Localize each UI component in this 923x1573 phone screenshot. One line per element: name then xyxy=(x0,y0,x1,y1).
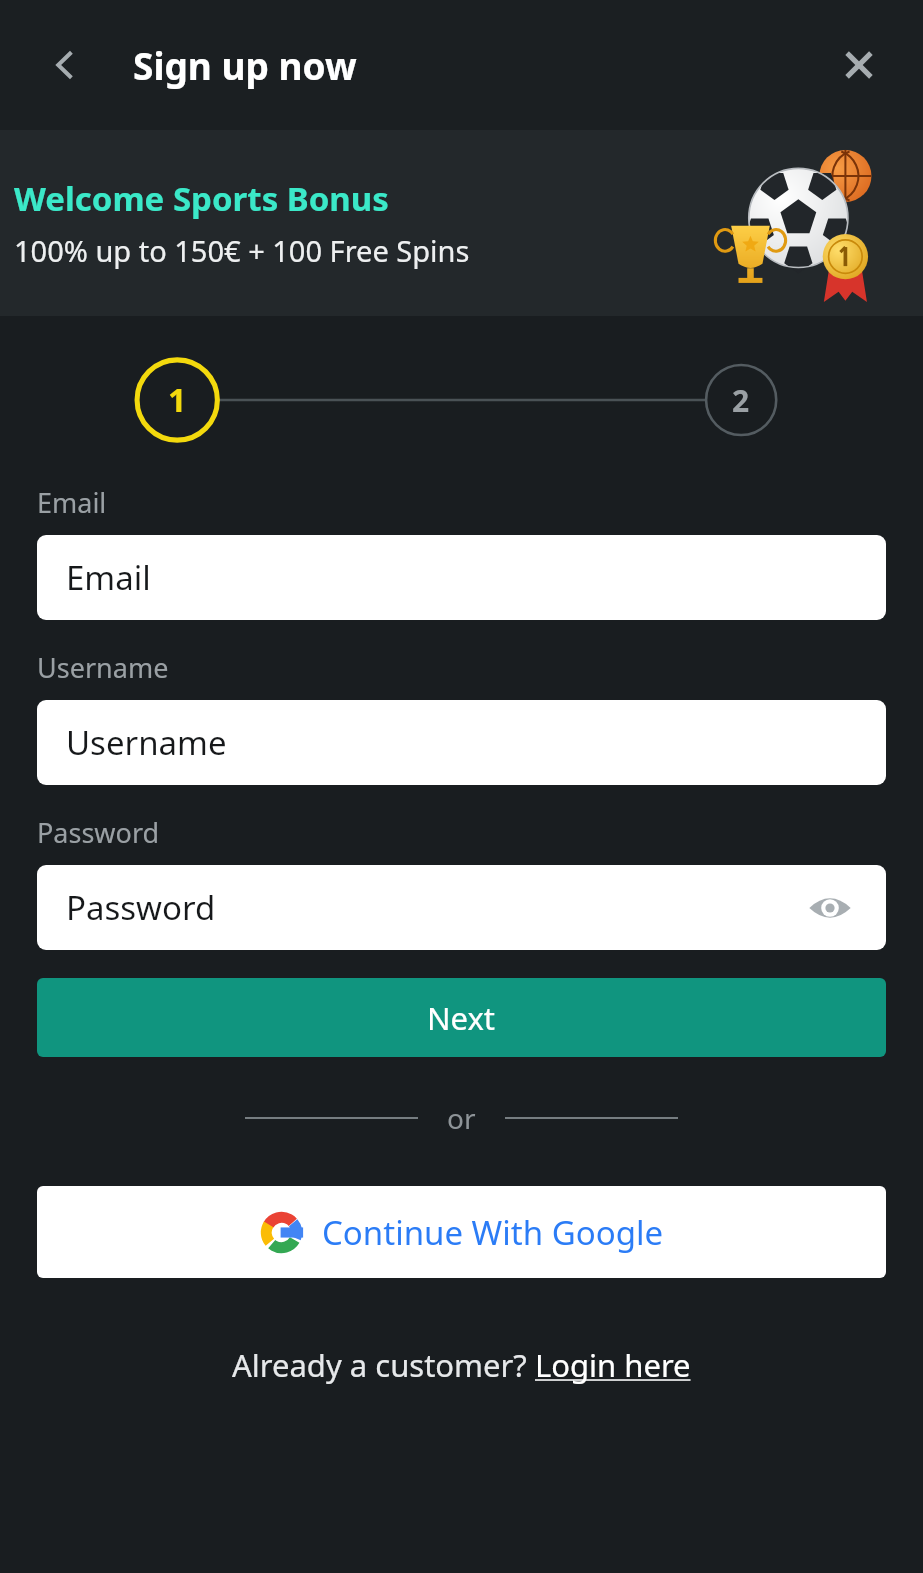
button[interactable]: Username xyxy=(37,700,886,785)
staticText: Already a customer? xyxy=(232,1344,535,1386)
button[interactable]: Continue With Google xyxy=(37,1186,886,1278)
button[interactable]: Next xyxy=(37,978,886,1057)
button[interactable]: Login here xyxy=(535,1344,691,1386)
staticText: 100% up to 150€ + 100 Free Spins xyxy=(14,231,470,270)
staticText: Email xyxy=(37,484,107,521)
button[interactable]: Step 2 xyxy=(706,365,776,435)
button[interactable]: Back xyxy=(34,34,96,96)
staticText: Username xyxy=(37,649,169,686)
staticText: Login here xyxy=(535,1344,691,1386)
staticText: Welcome Sports Bonus xyxy=(14,176,389,221)
staticText: or xyxy=(447,1099,476,1137)
staticText: Continue With Google xyxy=(322,1210,664,1255)
button[interactable]: Password xyxy=(37,865,886,950)
button[interactable]: Show password xyxy=(804,882,856,934)
button[interactable]: Close xyxy=(827,33,891,97)
staticText: Username xyxy=(66,720,227,765)
button[interactable]: Email xyxy=(37,535,886,620)
staticText: Email xyxy=(66,555,151,600)
staticText: 2 xyxy=(732,380,750,421)
staticText: Next xyxy=(427,997,496,1039)
button[interactable]: Step 1 xyxy=(137,360,217,440)
staticText: Password xyxy=(37,814,160,851)
staticText: Password xyxy=(66,885,216,930)
staticText: 1 xyxy=(168,378,187,422)
staticText: Sign up now xyxy=(133,40,357,90)
